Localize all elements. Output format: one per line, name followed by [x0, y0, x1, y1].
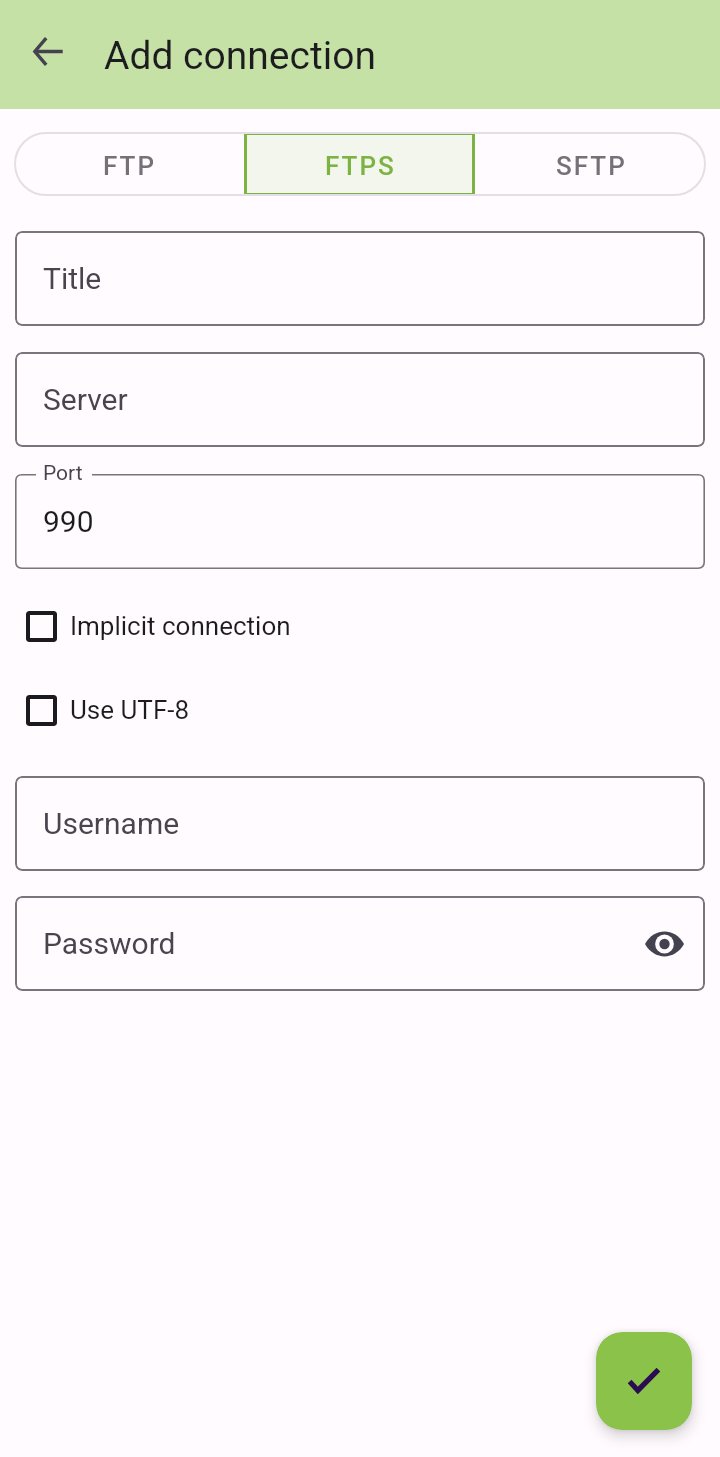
button[interactable]: Implicit connection — [0, 604, 720, 648]
staticText: Title — [43, 261, 102, 296]
button[interactable]: Title — [15, 231, 705, 326]
staticText: Username — [43, 806, 180, 841]
staticText: FTPS — [325, 151, 396, 181]
button[interactable]: Username — [15, 776, 705, 871]
button[interactable]: Password — [15, 896, 705, 991]
staticText: Use UTF-8 — [70, 695, 190, 725]
button[interactable]: SFTP — [475, 132, 706, 196]
staticText: Password — [43, 926, 176, 961]
staticText: SFTP — [556, 151, 627, 181]
staticText: Add connection — [104, 33, 376, 79]
staticText: Port — [43, 461, 83, 486]
button[interactable]: Back — [18, 21, 78, 81]
staticText: FTP — [103, 151, 157, 181]
staticText: 990 — [43, 504, 94, 539]
button[interactable]: Save — [596, 1332, 692, 1430]
button[interactable]: Use UTF-8 — [0, 688, 720, 732]
button[interactable]: FTPS — [244, 132, 475, 196]
button[interactable]: Show password — [636, 916, 692, 972]
button[interactable]: Port — [15, 474, 705, 569]
staticText: Server — [43, 382, 128, 417]
button[interactable]: Server — [15, 352, 705, 447]
staticText: Implicit connection — [70, 611, 291, 641]
button[interactable]: FTP — [14, 132, 244, 196]
